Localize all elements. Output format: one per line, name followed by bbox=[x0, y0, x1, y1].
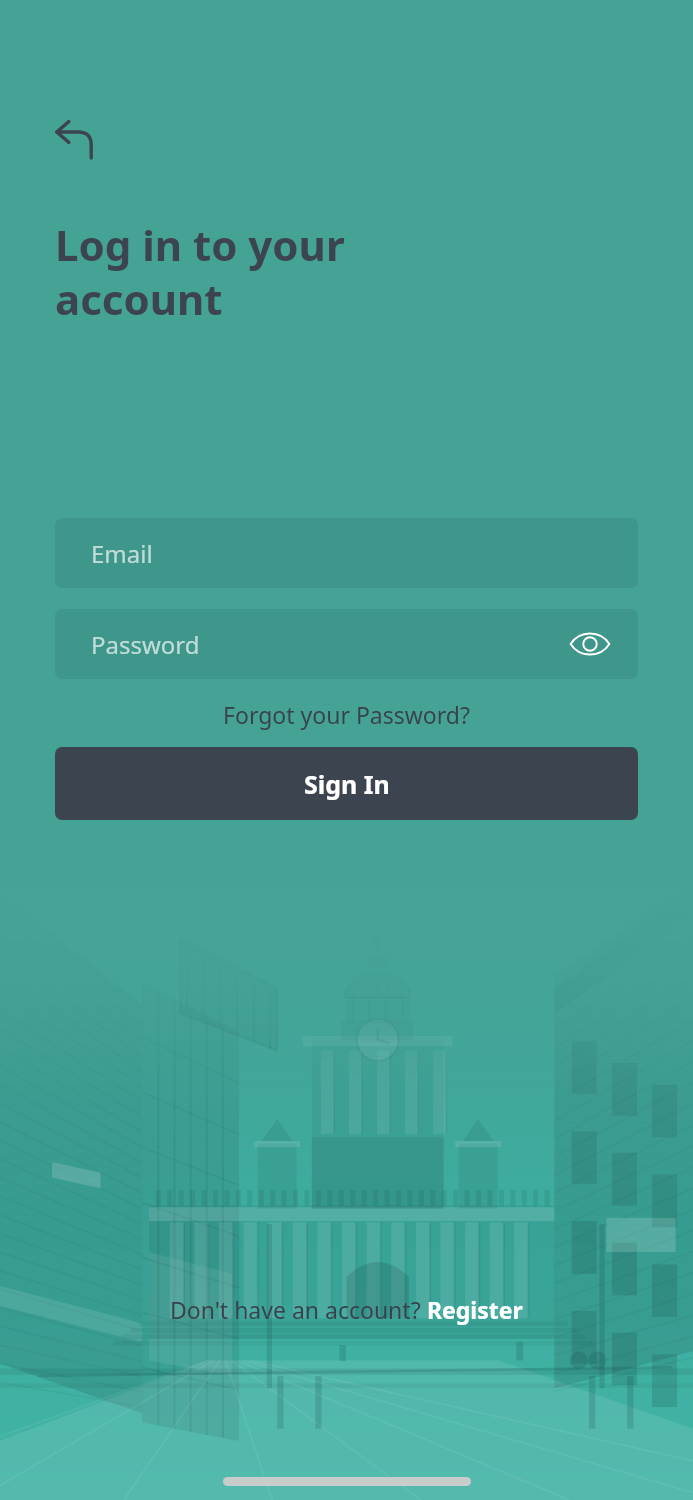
button[interactable]: Forgot your Password? bbox=[0, 699, 693, 730]
staticText: Register bbox=[427, 1294, 523, 1325]
button[interactable]: Password bbox=[55, 609, 638, 679]
button[interactable]: Sign In bbox=[55, 747, 638, 820]
staticText: Sign In bbox=[304, 767, 390, 801]
staticText: Don't have an account? bbox=[170, 1294, 427, 1325]
staticText: Password bbox=[91, 628, 200, 661]
staticText: Log in to your account bbox=[55, 216, 345, 328]
button[interactable]: Show password bbox=[564, 618, 616, 670]
staticText: Email bbox=[91, 537, 153, 570]
button[interactable]: Back bbox=[46, 112, 102, 168]
button[interactable]: Don't have an account? bbox=[170, 1294, 523, 1325]
staticText: Forgot your Password? bbox=[223, 699, 470, 730]
button[interactable]: Email bbox=[55, 518, 638, 588]
